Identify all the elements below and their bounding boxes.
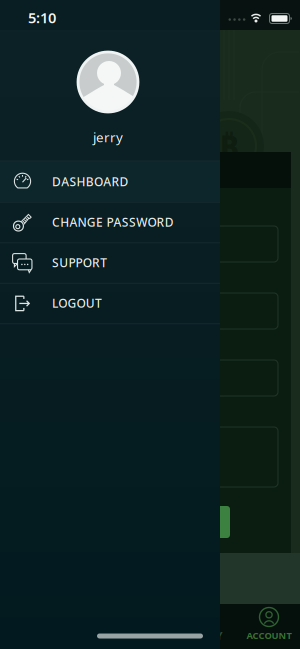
button[interactable]: SUPPORT: [0, 242, 220, 283]
button[interactable]: DASHBOARD: [0, 161, 220, 202]
staticText: 5:10: [28, 8, 56, 27]
staticText: jerry: [93, 128, 123, 146]
staticText: ACCOUNT: [246, 629, 291, 642]
staticText: LOGOUT: [52, 295, 102, 311]
staticText: ₿: [219, 123, 239, 169]
staticText: DASHBOARD: [52, 173, 129, 189]
button[interactable]: LOGOUT: [0, 282, 220, 323]
button[interactable]: ACCOUNT: [234, 604, 300, 644]
staticText: HISTORY: [177, 628, 223, 643]
button[interactable]: CHANGE PASSWORD: [0, 201, 220, 242]
staticText: SUPPORT: [52, 255, 107, 270]
staticText: CHANGE PASSWORD: [52, 214, 174, 230]
